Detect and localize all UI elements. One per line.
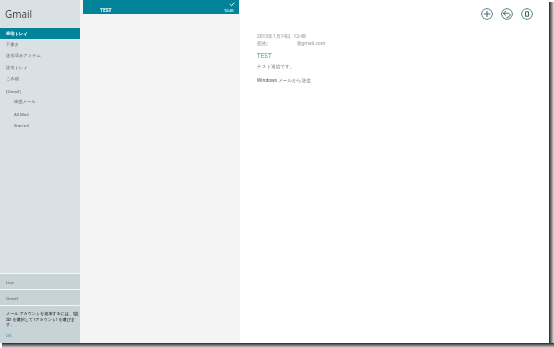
button[interactable]: 迷惑メール [0, 96, 80, 107]
staticText: 下書き [6, 42, 19, 47]
button[interactable]: Starred [0, 119, 80, 130]
button[interactable]: Delete [521, 8, 533, 20]
staticText: 送信済みアイテム [6, 53, 41, 58]
staticText: 2013年1月14日 12:48 [257, 33, 306, 40]
button[interactable]: 下書き [0, 39, 80, 50]
button[interactable]: 送信トレイ [0, 62, 80, 73]
staticText: テスト送信です。 [257, 64, 295, 70]
button[interactable]: All Mail [0, 108, 80, 119]
staticText: TEST [100, 7, 112, 14]
staticText: メール アカウントを追加するには、[設 定] を選択して [アカウント] を選び… [6, 311, 79, 327]
button[interactable]: 送信済みアイテム [0, 50, 80, 61]
staticText: 迷惑メール [14, 99, 36, 104]
staticText: Gmail [5, 7, 33, 20]
staticText: Live [6, 279, 14, 285]
button[interactable]: TEST [83, 0, 239, 14]
staticText: @gmail.com [297, 40, 326, 47]
staticText: TEST [257, 51, 272, 60]
staticText: 受信トレイ [6, 31, 28, 36]
staticText: 12:40 [224, 8, 234, 13]
button[interactable]: Reply [501, 8, 513, 20]
button[interactable]: [Gmail] [0, 85, 80, 96]
staticText: OK [6, 333, 12, 339]
button[interactable]: 受信トレイ [0, 28, 80, 39]
button[interactable]: Gmail [0, 290, 80, 305]
staticText: 宛先: [257, 40, 297, 47]
staticText: Windows メールから送信 [257, 77, 311, 83]
staticText: All Mail [14, 111, 29, 117]
staticText: [Gmail] [6, 88, 21, 94]
button[interactable]: ごみ箱 [0, 73, 80, 84]
button[interactable]: New mail [481, 8, 493, 20]
staticText: 送信トレイ [6, 65, 28, 70]
staticText: Starred [14, 122, 29, 128]
staticText: Gmail [6, 295, 18, 301]
staticText: ごみ箱 [6, 76, 20, 81]
button[interactable]: OK [0, 333, 80, 339]
button[interactable]: Live [0, 274, 80, 289]
